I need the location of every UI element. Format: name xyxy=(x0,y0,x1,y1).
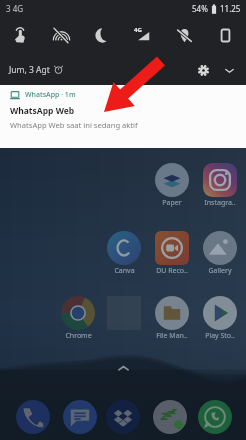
staticText: DU Reco.. xyxy=(156,266,188,276)
staticText: Chrome xyxy=(65,331,92,341)
button[interactable]: Messages xyxy=(63,400,97,434)
staticText: Instagra.. xyxy=(204,198,236,208)
staticText: Gallery xyxy=(208,266,232,276)
staticText: Paper xyxy=(162,198,182,208)
staticText: WhatsApp Web xyxy=(10,105,75,117)
button[interactable]: Location off xyxy=(164,17,205,54)
button[interactable]: Auto rotate xyxy=(205,17,246,54)
button[interactable]: Dropbox xyxy=(106,400,140,434)
staticText: WhatsApp Web saat ini sedang aktif xyxy=(10,120,138,130)
button[interactable]: Instagram xyxy=(203,163,237,197)
button[interactable]: Paper xyxy=(155,163,189,197)
staticText: Play Sto.. xyxy=(205,331,235,341)
button[interactable]: App drawer xyxy=(115,360,131,376)
button[interactable]: Settings xyxy=(190,57,216,83)
button[interactable]: Canva xyxy=(107,231,141,265)
button[interactable]: File Manager xyxy=(155,296,189,330)
button[interactable]: WhatsApp xyxy=(198,400,232,434)
button[interactable]: Search xyxy=(0,17,41,54)
button[interactable]: Do not disturb xyxy=(82,17,123,54)
button[interactable]: WhatsApp · 1m xyxy=(0,85,246,148)
button[interactable]: DU Recorder xyxy=(155,231,189,265)
button[interactable]: Expand xyxy=(216,57,242,83)
staticText: 3 4G xyxy=(6,3,24,14)
staticText: 54% xyxy=(192,3,208,14)
staticText: WhatsApp · 1m xyxy=(25,90,76,100)
button[interactable]: Sleep xyxy=(153,400,187,434)
button[interactable]: Gallery xyxy=(203,231,237,265)
staticText: Jum, 3 Agt xyxy=(9,64,50,76)
staticText: File Man.. xyxy=(156,331,188,341)
button[interactable]: Mobile data xyxy=(123,17,164,54)
staticText: 11.25 xyxy=(220,3,241,14)
button[interactable]: Chrome xyxy=(61,296,95,330)
staticText: Canva xyxy=(114,266,135,276)
button[interactable]: Play Store xyxy=(203,296,237,330)
staticText: 4G xyxy=(134,26,142,34)
button[interactable]: Phone xyxy=(16,400,50,434)
button[interactable]: Sound off xyxy=(41,17,82,54)
